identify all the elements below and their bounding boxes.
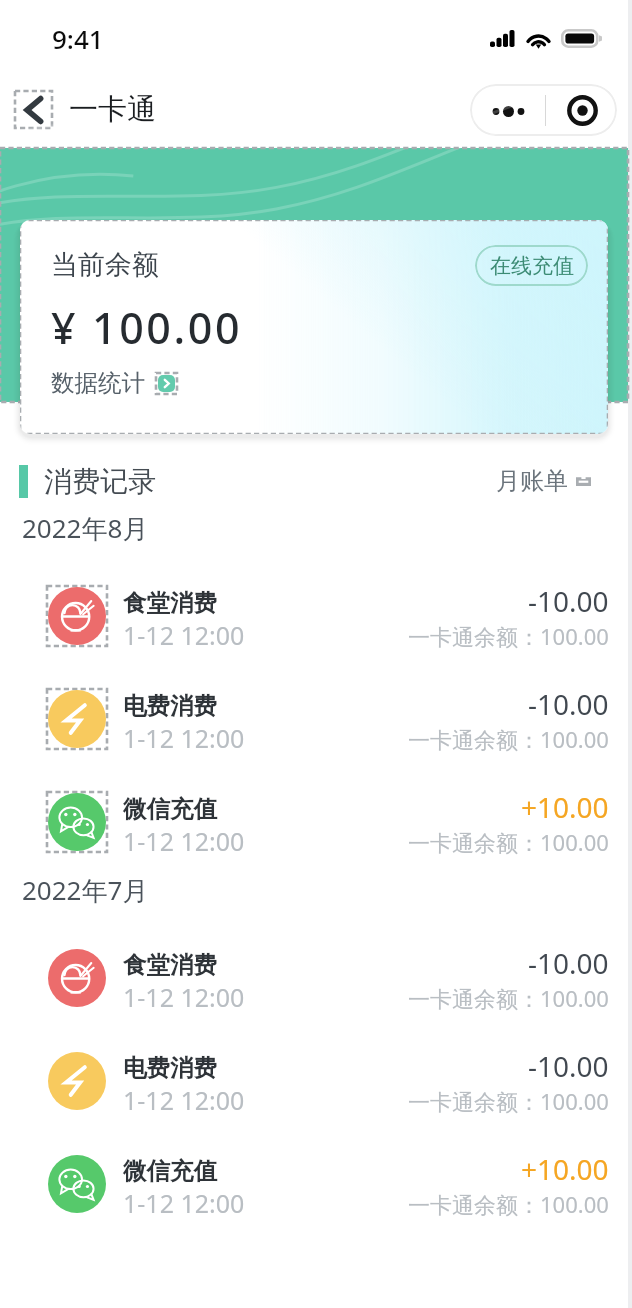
staticText: 数据统计 [51, 368, 145, 398]
staticText: -10.00 [528, 685, 609, 723]
staticText: 一卡通余额：100.00 [408, 983, 609, 1013]
staticText: 1-12 12:00 [123, 980, 245, 1014]
staticText: 2022年7月 [22, 872, 149, 908]
staticText: 1-12 12:00 [123, 824, 245, 858]
staticText: 消费记录 [44, 464, 156, 499]
button[interactable]: Close mini program [547, 84, 617, 136]
other: Statistics [156, 373, 177, 394]
staticText: 一卡通余额：100.00 [408, 827, 609, 857]
staticText: 一卡通 [69, 91, 156, 128]
staticText: 9:41 [52, 21, 104, 56]
staticText: +10.00 [521, 788, 609, 826]
button[interactable]: 数据统计 [51, 368, 177, 398]
staticText: 一卡通余额：100.00 [408, 724, 609, 754]
staticText: +10.00 [521, 1150, 609, 1188]
staticText: 2022年8月 [22, 510, 149, 546]
button[interactable]: 食堂消费 [0, 568, 628, 664]
button[interactable]: 食堂消费 [0, 930, 628, 1026]
staticText: 电费消费 [123, 691, 217, 721]
staticText: 月账单 [496, 466, 568, 496]
button[interactable]: 电费消费 [0, 1033, 628, 1129]
staticText: 1-12 12:00 [123, 1083, 245, 1117]
button[interactable]: More options [470, 84, 546, 136]
button[interactable]: 电费消费 [0, 671, 628, 767]
button[interactable]: 在线充值 [475, 245, 588, 286]
staticText: 一卡通余额：100.00 [408, 621, 609, 651]
staticText: 微信充值 [123, 794, 217, 824]
staticText: 在线充值 [490, 253, 574, 279]
button[interactable]: Back [15, 91, 52, 128]
staticText: 一卡通余额：100.00 [408, 1086, 609, 1116]
staticText: -10.00 [528, 582, 609, 620]
staticText: 食堂消费 [123, 950, 217, 980]
button[interactable]: 微信充值 [0, 774, 628, 870]
button[interactable]: 当前余额 [20, 220, 608, 434]
staticText: 1-12 12:00 [123, 1186, 245, 1220]
staticText: 食堂消费 [123, 588, 217, 618]
staticText: 一卡通余额：100.00 [408, 1189, 609, 1219]
staticText: 1-12 12:00 [123, 618, 245, 652]
staticText: ¥ 100.00 [51, 298, 243, 357]
button[interactable]: 微信充值 [0, 1136, 628, 1232]
staticText: -10.00 [528, 1047, 609, 1085]
staticText: 微信充值 [123, 1156, 217, 1186]
staticText: 当前余额 [51, 248, 159, 282]
staticText: 电费消费 [123, 1053, 217, 1083]
staticText: -10.00 [528, 944, 609, 982]
button[interactable]: 月账单 [496, 466, 591, 496]
staticText: 1-12 12:00 [123, 721, 245, 755]
